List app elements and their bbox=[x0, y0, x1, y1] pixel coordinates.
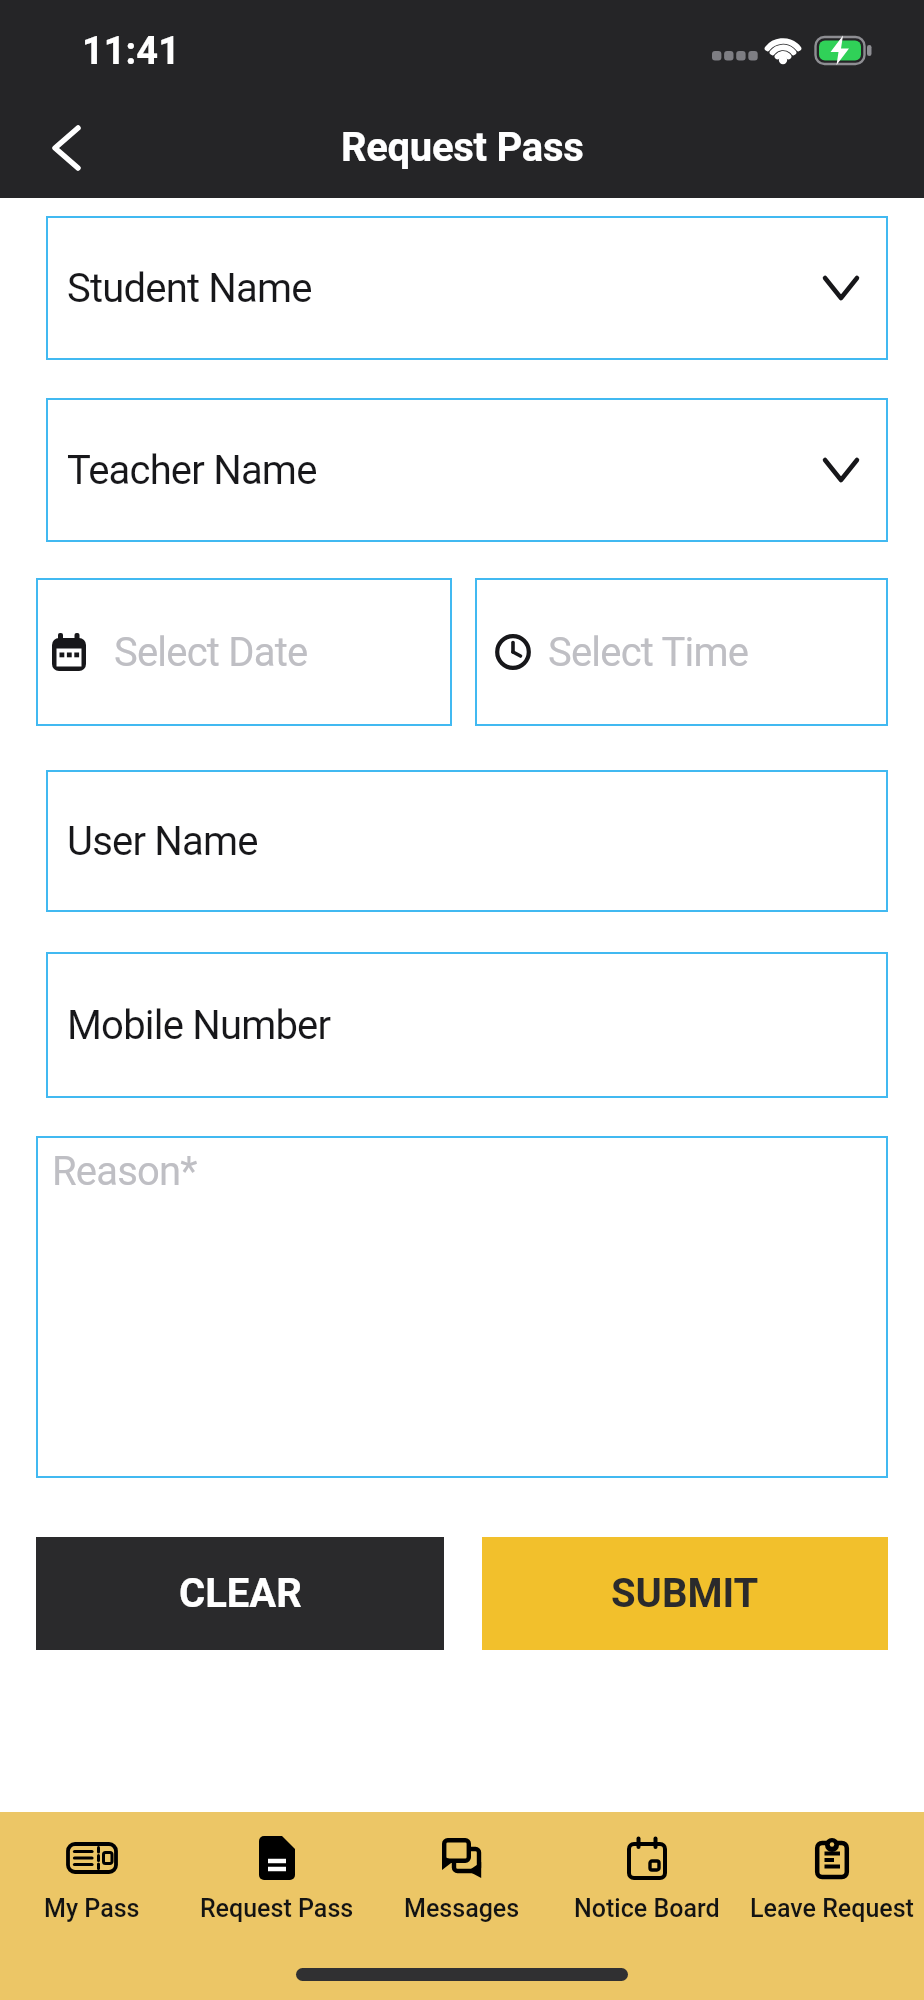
button[interactable]: Select Date bbox=[36, 578, 452, 726]
staticText: Messages bbox=[404, 1894, 520, 1923]
staticText: Request Pass bbox=[200, 1894, 354, 1923]
button[interactable]: SUBMIT bbox=[482, 1537, 888, 1650]
staticText: Mobile Number bbox=[67, 1002, 331, 1049]
button[interactable]: Messages bbox=[369, 1836, 554, 1923]
button[interactable]: Reason* bbox=[36, 1136, 888, 1478]
staticText: Notice Board bbox=[574, 1894, 720, 1923]
staticText: Select Time bbox=[548, 629, 749, 676]
staticText: CLEAR bbox=[179, 1570, 302, 1617]
button[interactable]: Mobile Number bbox=[46, 952, 888, 1098]
staticText: Request Pass bbox=[341, 124, 584, 171]
button[interactable]: My Pass bbox=[0, 1836, 184, 1923]
staticText: 11:41 bbox=[82, 29, 180, 74]
staticText: Select Date bbox=[114, 629, 308, 676]
button[interactable]: Notice Board bbox=[554, 1836, 739, 1923]
button[interactable]: Leave Request bbox=[739, 1836, 924, 1923]
button[interactable]: Select Time bbox=[475, 578, 888, 726]
staticText: Reason* bbox=[52, 1148, 197, 1195]
staticText: My Pass bbox=[44, 1894, 140, 1923]
button[interactable] bbox=[42, 118, 90, 178]
staticText: SUBMIT bbox=[611, 1570, 759, 1617]
button[interactable]: CLEAR bbox=[36, 1537, 444, 1650]
staticText: Student Name bbox=[67, 265, 312, 312]
button[interactable]: User Name bbox=[46, 770, 888, 912]
button[interactable]: Teacher Name bbox=[46, 398, 888, 542]
staticText: User Name bbox=[67, 818, 258, 865]
button[interactable]: Request Pass bbox=[184, 1836, 369, 1923]
staticText: Leave Request bbox=[750, 1894, 914, 1923]
button[interactable]: Student Name bbox=[46, 216, 888, 360]
staticText: Teacher Name bbox=[67, 447, 317, 494]
